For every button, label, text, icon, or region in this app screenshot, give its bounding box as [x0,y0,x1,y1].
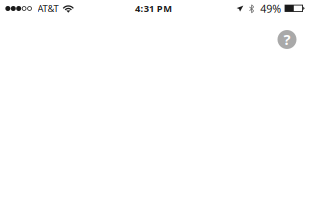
button[interactable]: Help [277,30,296,49]
staticText: 4:31 PM [135,2,172,15]
staticText: AT&T [37,2,58,15]
staticText: 49% [260,1,281,16]
staticText: ? [283,30,290,49]
